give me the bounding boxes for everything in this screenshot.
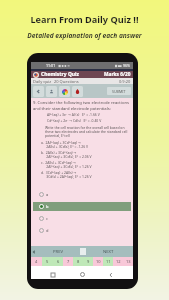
staticText: 11:01 [46, 63, 56, 68]
staticText: 8 [77, 259, 80, 264]
staticText: 12 [116, 259, 121, 264]
button[interactable]: Home [75, 270, 89, 279]
button[interactable]: 13 [123, 257, 133, 266]
staticText: SUBMIT [112, 89, 126, 94]
staticText: 11 [106, 259, 111, 264]
staticText: 20 Questions [54, 79, 79, 84]
button[interactable]: 5 [42, 257, 53, 266]
staticText: c [46, 216, 48, 221]
button[interactable]: SUBMIT [107, 87, 131, 95]
staticText: a. 2Al³⁺(aq) + 3Cd²⁺(aq) → 2Al(s) + 3Cd(… [41, 140, 89, 149]
staticText: c. 2Al(s) + 3Cd²⁺(aq) → 2Al³⁺(aq) + 3Cd(… [41, 160, 92, 169]
staticText: b. 2Al(s) + 3Cd²⁺(aq) → 2Al³⁺(aq) + 3Cd(… [41, 150, 92, 159]
button[interactable]: d [33, 226, 131, 235]
button[interactable]: 7 [63, 257, 73, 266]
button[interactable]: 12 [113, 257, 123, 266]
staticText: 13 [126, 259, 131, 264]
button[interactable]: Back [104, 270, 118, 279]
button[interactable]: PREV [36, 247, 80, 256]
button[interactable]: Ink [72, 86, 83, 97]
staticText: d. 3Cd²⁺(aq) + 2Al(s) → 3Cd(s) + 2Al³⁺(a… [41, 170, 92, 179]
staticText: Write the cell reaction for the overall … [45, 125, 131, 138]
button[interactable]: 6 [53, 257, 63, 266]
staticText: Cd²⁺(aq) + 2e⁻ → Cd(s) E° = -0.40 V [47, 118, 102, 123]
staticText: 6 [57, 259, 60, 264]
staticText: PREV [53, 249, 63, 255]
button[interactable]: b [33, 202, 131, 211]
staticText: Daily quiz [33, 79, 52, 84]
staticText: a [46, 192, 49, 197]
staticText: Detailed explanation of each answer [27, 31, 142, 40]
button[interactable]: c [33, 214, 131, 223]
staticText: 0:9:20 [119, 79, 131, 84]
staticText: Chemistry Quiz [41, 71, 80, 78]
button[interactable]: 9 [83, 257, 93, 266]
button[interactable]: NEXT [86, 247, 131, 256]
staticText: Al³⁺(aq) + 3e⁻ → Al (s) E° = -1.66 V [47, 112, 100, 117]
button[interactable]: 8 [73, 257, 83, 266]
button[interactable]: 11 [103, 257, 113, 266]
staticText: b [46, 204, 49, 209]
staticText: 7 [67, 259, 70, 264]
button[interactable]: 10 [93, 257, 103, 266]
button[interactable]: Profile [46, 86, 57, 97]
staticText: 5 [46, 259, 49, 264]
button[interactable]: Colors [59, 86, 70, 97]
staticText: Learn From Daily Quiz !! [30, 13, 139, 26]
staticText: d [46, 228, 49, 233]
staticText: 10 [96, 259, 101, 264]
button[interactable]: Recents [46, 270, 60, 279]
staticText: 4 [35, 259, 38, 264]
staticText: 9 [87, 259, 90, 264]
staticText: 9. Consider the following two electrode … [33, 100, 131, 111]
button[interactable]: a [33, 190, 131, 199]
button[interactable]: Back [33, 86, 44, 97]
button[interactable]: 4 [31, 257, 42, 266]
staticText: Marks 6/20 [104, 71, 131, 78]
staticText: 96% [123, 63, 131, 68]
staticText: NEXT [103, 249, 114, 255]
